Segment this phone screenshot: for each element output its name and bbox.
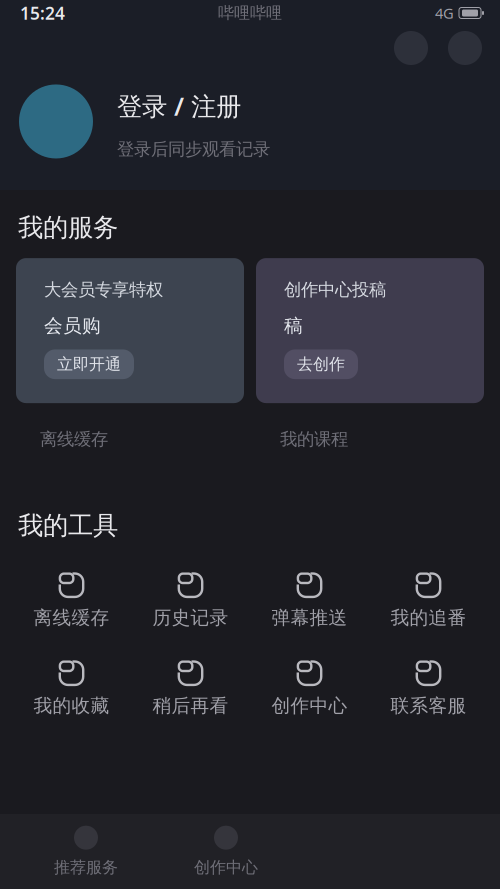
staticText: 离线缓存 [33, 606, 109, 629]
button[interactable]: 联系客服 [369, 644, 488, 732]
staticText: 创作中心 [271, 694, 347, 717]
staticText: 稍后再看 [152, 694, 228, 717]
staticText: 创作中心投稿 [284, 279, 386, 300]
button[interactable]: 离线缓存 [16, 427, 244, 451]
staticText: 立即开通 [57, 354, 121, 374]
staticText: 弹幕推送 [271, 606, 347, 629]
button[interactable]: 我的课程 [256, 427, 484, 451]
button[interactable]: 离线缓存 [12, 556, 131, 644]
staticText: 我的课程 [280, 428, 348, 450]
staticText: 会员购 [44, 314, 101, 337]
staticText: 15:24 [20, 1, 65, 24]
staticText: 登录 / 注册 [117, 89, 241, 123]
staticText: 创作中心 [194, 858, 258, 877]
button[interactable]: 创作中心 [250, 644, 369, 732]
button[interactable]: 我的追番 [369, 556, 488, 644]
button[interactable]: 设置 [448, 31, 482, 65]
staticText: 我的工具 [18, 510, 118, 541]
button[interactable]: 我的收藏 [12, 644, 131, 732]
staticText: 我的追番 [390, 606, 466, 629]
button[interactable]: 稍后再看 [131, 644, 250, 732]
staticText: 推荐服务 [54, 858, 118, 877]
button[interactable]: 弹幕推送 [250, 556, 369, 644]
staticText: 稿 [284, 314, 303, 337]
staticText: 历史记录 [152, 606, 228, 629]
staticText: 我的服务 [18, 212, 118, 243]
button[interactable]: 创作中心 [156, 814, 296, 889]
button[interactable]: 推荐服务 [16, 814, 156, 889]
staticText: 大会员专享特权 [44, 279, 163, 300]
button[interactable]: 扫一扫 [394, 31, 428, 65]
button[interactable]: 登录 / 注册 [19, 83, 270, 160]
staticText: 4G [435, 3, 454, 23]
button[interactable]: 创作中心投稿 [256, 258, 484, 403]
staticText: 哔哩哔哩 [218, 3, 282, 23]
staticText: 离线缓存 [40, 428, 108, 450]
staticText: 登录后同步观看记录 [117, 139, 270, 160]
staticText: 去创作 [297, 354, 345, 374]
button[interactable]: 大会员专享特权 [16, 258, 244, 403]
staticText: 联系客服 [390, 694, 466, 717]
staticText: 我的收藏 [33, 694, 109, 717]
button[interactable]: 历史记录 [131, 556, 250, 644]
